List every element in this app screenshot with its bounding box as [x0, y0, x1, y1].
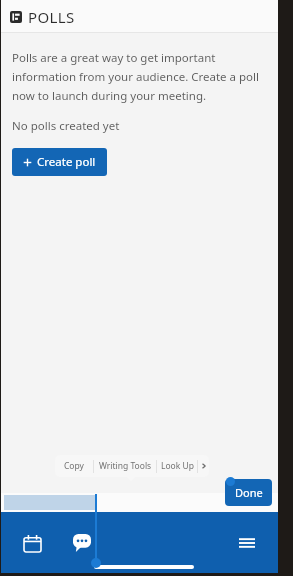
- staticText: Create poll: [37, 154, 96, 170]
- button[interactable]: Menu: [230, 526, 264, 560]
- button[interactable]: Done: [225, 479, 272, 506]
- staticText: Polls are a great way to get important i…: [12, 50, 266, 103]
- button[interactable]: Calendar: [15, 526, 49, 560]
- staticText: Done: [235, 485, 263, 500]
- staticText: No polls created yet: [12, 118, 120, 134]
- button[interactable]: Look Up: [157, 455, 197, 477]
- staticText: Look Up: [161, 460, 194, 472]
- button[interactable]: Writing Tools: [94, 455, 156, 477]
- button[interactable]: Copy: [55, 455, 93, 477]
- button[interactable]: More: [198, 455, 209, 477]
- button[interactable]: Create poll: [12, 148, 107, 176]
- staticText: Copy: [64, 460, 84, 472]
- button[interactable]: Chat: [65, 526, 99, 560]
- staticText: Writing Tools: [99, 460, 152, 472]
- staticText: POLLS: [28, 7, 75, 27]
